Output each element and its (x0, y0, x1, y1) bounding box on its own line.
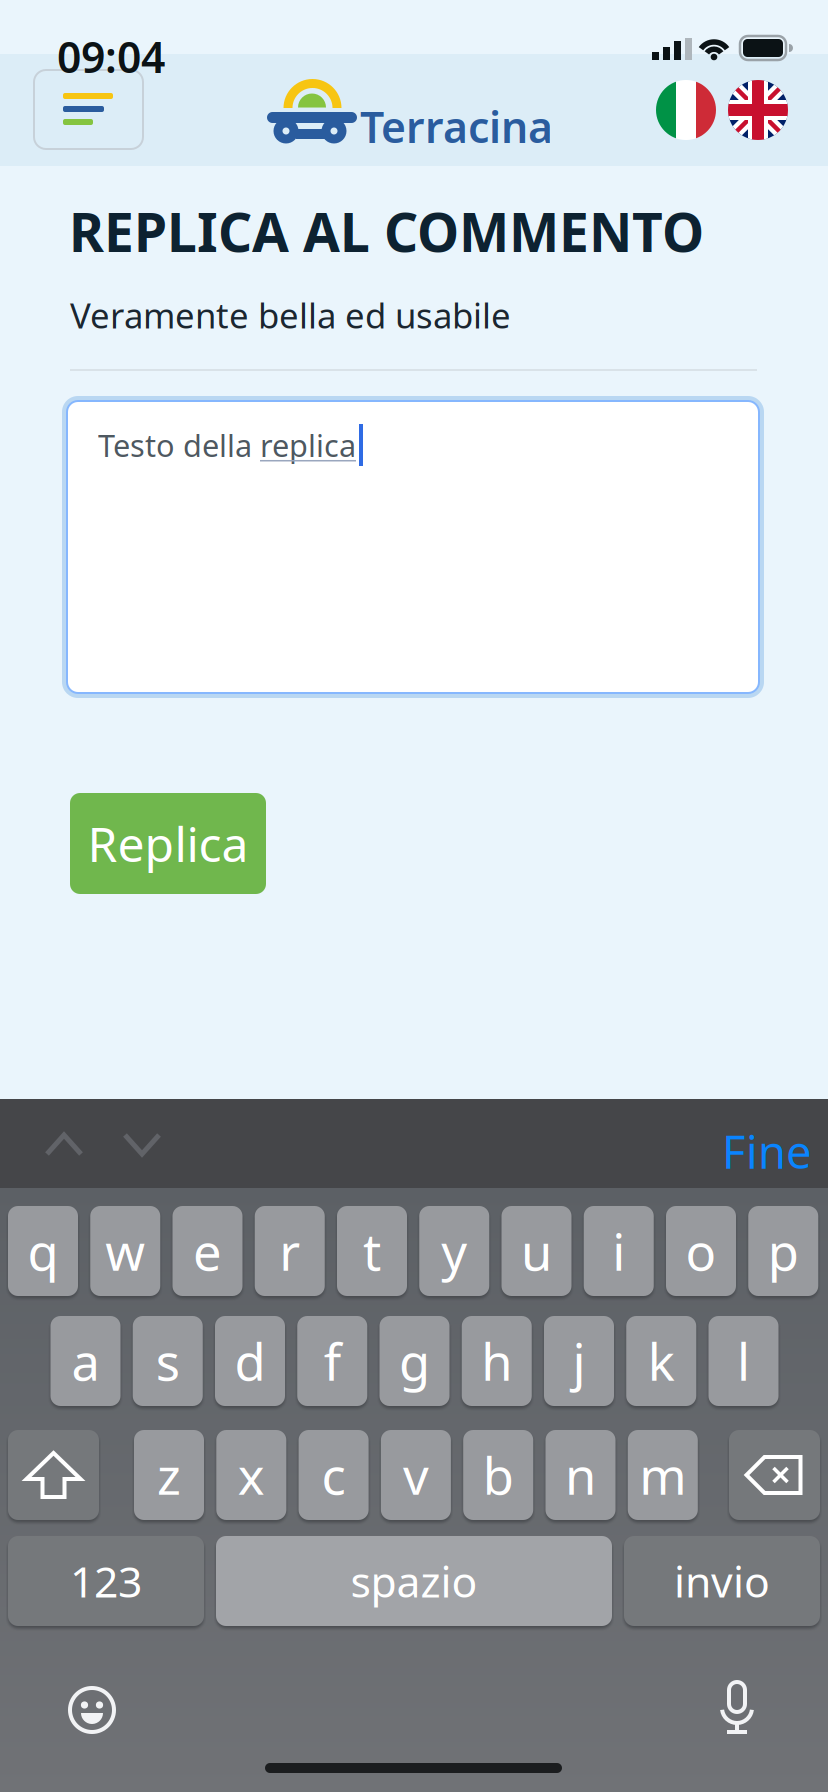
button[interactable]: Campo precedente (45, 1130, 83, 1158)
button[interactable]: w (90, 1206, 160, 1296)
button[interactable]: 123 (8, 1536, 204, 1626)
button[interactable]: s (133, 1316, 203, 1406)
staticText: t (363, 1217, 381, 1285)
button[interactable]: invio (624, 1536, 820, 1626)
button[interactable]: q (8, 1206, 78, 1296)
button[interactable]: g (379, 1316, 449, 1406)
button[interactable]: k (626, 1316, 696, 1406)
staticText: x (238, 1441, 265, 1509)
button[interactable]: x (216, 1430, 286, 1520)
staticText: j (572, 1327, 585, 1395)
button[interactable]: Replica (70, 793, 266, 894)
button[interactable]: z (134, 1430, 204, 1520)
button[interactable]: a (50, 1316, 120, 1406)
staticText: g (399, 1327, 430, 1395)
button[interactable]: Cancella (729, 1430, 820, 1520)
button[interactable]: English (728, 80, 788, 140)
staticText: k (648, 1327, 675, 1395)
staticText: Testo della (98, 425, 260, 465)
staticText: Terracina (360, 98, 553, 155)
staticText: w (105, 1217, 145, 1285)
staticText: a (71, 1327, 99, 1395)
button[interactable]: Emoji (68, 1686, 116, 1734)
staticText: p (768, 1217, 799, 1285)
staticText: h (481, 1327, 512, 1395)
button[interactable]: Italiano (656, 80, 716, 140)
button[interactable]: m (628, 1430, 698, 1520)
staticText: 09:04 (57, 28, 165, 85)
button[interactable]: r (255, 1206, 325, 1296)
staticText: o (685, 1217, 716, 1285)
staticText: s (156, 1327, 180, 1395)
staticText: c (322, 1441, 346, 1509)
staticText: q (27, 1217, 58, 1285)
button[interactable]: d (215, 1316, 285, 1406)
staticText: d (234, 1327, 265, 1395)
button[interactable]: j (544, 1316, 614, 1406)
staticText: n (565, 1441, 596, 1509)
staticText: 123 (70, 1553, 142, 1609)
staticText: REPLICA AL COMMENTO (69, 196, 704, 267)
button[interactable]: h (462, 1316, 532, 1406)
staticText: l (737, 1327, 750, 1395)
staticText: spazio (350, 1553, 477, 1609)
staticText: z (157, 1441, 181, 1509)
staticText: Fine (722, 1121, 812, 1181)
staticText: y (441, 1217, 467, 1285)
staticText: Replica (87, 812, 248, 875)
staticText: m (639, 1441, 686, 1509)
staticText: u (521, 1217, 552, 1285)
staticText: Veramente bella ed usabile (70, 292, 511, 338)
button[interactable]: b (463, 1430, 533, 1520)
staticText: invio (674, 1553, 770, 1609)
button[interactable]: Fine (722, 1121, 812, 1181)
staticText: e (193, 1217, 222, 1285)
button[interactable]: t (337, 1206, 407, 1296)
button[interactable]: spazio (216, 1536, 612, 1626)
button[interactable]: l (708, 1316, 778, 1406)
staticText: i (612, 1217, 625, 1285)
button[interactable]: c (299, 1430, 369, 1520)
button[interactable]: u (501, 1206, 571, 1296)
button[interactable]: Dettatura (719, 1682, 755, 1734)
staticText: r (279, 1217, 300, 1285)
button[interactable]: e (172, 1206, 242, 1296)
button[interactable]: v (381, 1430, 451, 1520)
staticText: b (483, 1441, 514, 1509)
button[interactable]: Maiuscole (8, 1430, 99, 1520)
staticText: replica (260, 425, 356, 465)
staticText: v (403, 1441, 429, 1509)
button[interactable]: n (545, 1430, 615, 1520)
button[interactable]: Campo successivo (123, 1130, 161, 1158)
button[interactable]: i (584, 1206, 654, 1296)
button[interactable]: f (297, 1316, 367, 1406)
staticText: f (324, 1327, 341, 1395)
button[interactable]: y (419, 1206, 489, 1296)
button[interactable]: Menu (34, 70, 143, 149)
button[interactable]: o (666, 1206, 736, 1296)
button[interactable]: p (748, 1206, 818, 1296)
